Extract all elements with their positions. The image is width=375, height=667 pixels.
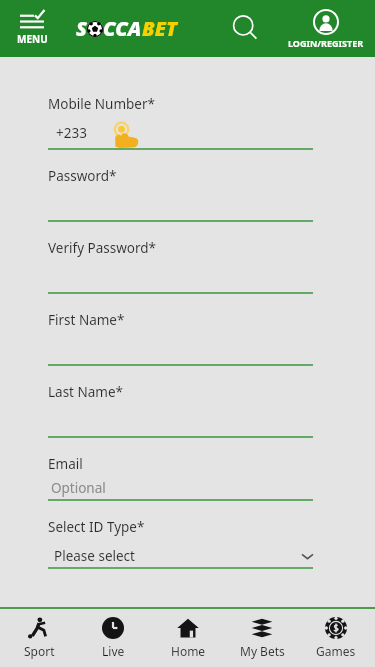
- staticText: CCA: [103, 15, 142, 42]
- staticText: My Bets: [240, 643, 285, 659]
- staticText: S: [76, 15, 87, 42]
- button[interactable]: Please select: [48, 545, 313, 567]
- staticText: Select ID Type*: [48, 518, 145, 536]
- staticText: First Name*: [48, 311, 125, 329]
- button[interactable]: Live: [78, 609, 148, 667]
- staticText: Password*: [48, 167, 117, 185]
- button[interactable]: Games: [301, 609, 371, 667]
- staticText: Live: [102, 643, 125, 659]
- staticText: Games: [316, 643, 356, 659]
- button[interactable]: LOGIN/REGISTER: [277, 0, 375, 57]
- button[interactable]: S: [76, 15, 177, 42]
- staticText: BET: [142, 15, 177, 42]
- staticText: Verify Password*: [48, 239, 157, 257]
- staticText: Please select: [54, 547, 135, 565]
- staticText: Email: [48, 455, 83, 473]
- button[interactable]: Sport: [4, 609, 74, 667]
- staticText: Last Name*: [48, 383, 124, 401]
- button[interactable]: Search: [222, 6, 268, 52]
- staticText: Mobile Number*: [48, 95, 155, 113]
- staticText: LOGIN/REGISTER: [288, 37, 364, 49]
- staticText: +233: [56, 124, 87, 142]
- staticText: Optional: [51, 479, 106, 497]
- button[interactable]: My Bets: [227, 609, 297, 667]
- staticText: Sport: [24, 643, 55, 659]
- button[interactable]: Home: [153, 609, 223, 667]
- staticText: MENU: [17, 32, 48, 46]
- button[interactable]: MENU: [6, 0, 58, 57]
- staticText: Home: [171, 643, 206, 659]
